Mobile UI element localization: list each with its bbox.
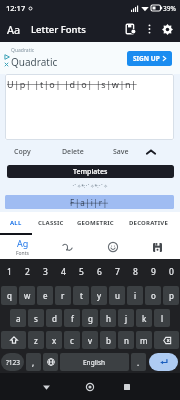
button[interactable]: 3: [36, 259, 54, 284]
button[interactable]: Shift: [1, 331, 26, 349]
button[interactable]: Enter: [149, 353, 178, 371]
button[interactable]: Collapse: [139, 141, 163, 163]
staticText: Save: [113, 147, 129, 157]
button[interactable]: 4: [54, 259, 72, 284]
staticText: y: [97, 290, 102, 301]
button[interactable]: Ag: [0, 235, 45, 259]
button[interactable]: Change language: [43, 353, 58, 371]
button[interactable]: Templates: [7, 165, 174, 178]
staticText: f: [71, 313, 74, 324]
staticText: ･ﾟ✧*:･ﾟ✧*:･ﾟ✧: [72, 183, 108, 190]
staticText: Templates: [73, 167, 108, 177]
staticText: p: [169, 290, 174, 301]
staticText: a: [16, 313, 21, 324]
staticText: i: [134, 290, 137, 301]
staticText: r: [61, 290, 65, 301]
button[interactable]: Save as image: [121, 19, 141, 39]
staticText: 7: [115, 266, 120, 278]
staticText: s: [34, 313, 38, 324]
button[interactable]: h: [100, 309, 116, 327]
button[interactable]: Back: [36, 377, 56, 397]
staticText: t: [80, 290, 83, 301]
staticText: Letter Fonts: [31, 23, 86, 36]
button[interactable]: 6: [90, 259, 108, 284]
button[interactable]: x: [46, 331, 62, 349]
staticText: 9: [151, 266, 156, 278]
button[interactable]: 5: [72, 259, 90, 284]
button[interactable]: 9: [144, 259, 162, 284]
button[interactable]: r: [55, 286, 71, 305]
staticText: 1: [7, 266, 12, 278]
staticText: Quadratic: [11, 47, 35, 54]
button[interactable]: l: [154, 309, 170, 327]
button[interactable]: ?123: [1, 353, 24, 371]
button[interactable]: m: [136, 331, 152, 349]
button[interactable]: F|a|i|r|: [5, 195, 174, 209]
button[interactable]: Copy: [0, 141, 45, 163]
staticText: Quadratic: [11, 55, 58, 69]
button[interactable]: f: [64, 309, 80, 327]
button[interactable]: Recent apps: [117, 377, 137, 397]
staticText: 5: [79, 266, 84, 278]
button[interactable]: 2: [18, 259, 36, 284]
button[interactable]: Backspace: [154, 331, 179, 349]
staticText: GEOMETRIC: [77, 219, 114, 227]
button[interactable]: d: [46, 309, 62, 327]
button[interactable]: o: [145, 286, 161, 305]
button[interactable]: c: [64, 331, 80, 349]
staticText: d: [52, 313, 57, 324]
button[interactable]: GEOMETRIC: [70, 212, 120, 233]
button[interactable]: .: [131, 353, 146, 371]
button[interactable]: DECORATIVE: [120, 212, 176, 233]
button[interactable]: English: [60, 353, 129, 371]
button[interactable]: More options: [141, 21, 157, 37]
button[interactable]: U|p| |t|o| |d|o| |s|w|n|: [7, 78, 174, 140]
button[interactable]: CLASSIC: [32, 212, 70, 233]
button[interactable]: Save: [99, 141, 142, 163]
button[interactable]: y: [91, 286, 107, 305]
staticText: m: [140, 335, 148, 346]
button[interactable]: Delete: [47, 141, 99, 163]
button[interactable]: Saved: [135, 235, 180, 259]
staticText: Copy: [14, 147, 31, 157]
button[interactable]: i: [127, 286, 143, 305]
staticText: Fonts: [16, 250, 29, 257]
staticText: c: [70, 335, 74, 346]
staticText: 2: [25, 266, 30, 278]
button[interactable]: Emoji: [90, 235, 135, 259]
button[interactable]: 7: [108, 259, 126, 284]
button[interactable]: p: [163, 286, 179, 305]
button[interactable]: 0: [162, 259, 180, 284]
button[interactable]: Art: [45, 235, 90, 259]
button[interactable]: u: [109, 286, 125, 305]
button[interactable]: v: [82, 331, 98, 349]
button[interactable]: g: [82, 309, 98, 327]
button[interactable]: 8: [126, 259, 144, 284]
button[interactable]: q: [1, 286, 17, 305]
button[interactable]: ,: [26, 353, 41, 371]
staticText: n: [124, 335, 129, 346]
staticText: ?123: [6, 358, 20, 367]
staticText: v: [88, 335, 93, 346]
button[interactable]: w: [19, 286, 35, 305]
button[interactable]: n: [118, 331, 134, 349]
button[interactable]: z: [28, 331, 44, 349]
button[interactable]: Settings: [157, 19, 177, 39]
staticText: .: [137, 357, 140, 368]
staticText: h: [106, 313, 111, 324]
button[interactable]: 1: [0, 259, 18, 284]
button[interactable]: ALL: [0, 212, 32, 233]
button[interactable]: Home: [80, 377, 100, 397]
staticText: e: [43, 290, 48, 301]
staticText: 0: [169, 266, 174, 278]
button[interactable]: a: [10, 309, 26, 327]
staticText: k: [142, 313, 147, 324]
staticText: b: [106, 335, 111, 346]
button[interactable]: s: [28, 309, 44, 327]
button[interactable]: SIGN UP: [127, 51, 172, 66]
button[interactable]: j: [118, 309, 134, 327]
button[interactable]: k: [136, 309, 152, 327]
button[interactable]: t: [73, 286, 89, 305]
button[interactable]: e: [37, 286, 53, 305]
button[interactable]: b: [100, 331, 116, 349]
